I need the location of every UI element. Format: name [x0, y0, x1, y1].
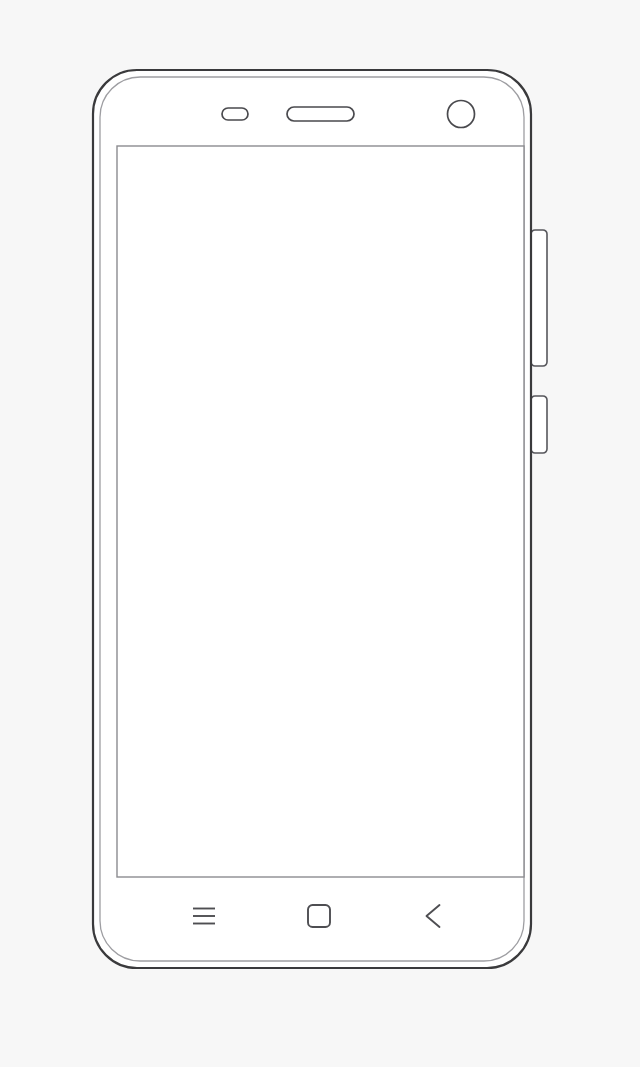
button[interactable]: Recent apps [180, 892, 228, 940]
button[interactable]: Back [409, 892, 457, 940]
button[interactable]: Home [295, 892, 343, 940]
